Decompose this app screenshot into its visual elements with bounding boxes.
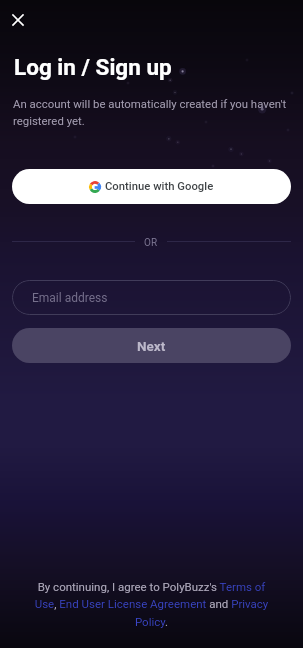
staticText: Log in / Sign up — [14, 54, 172, 80]
button[interactable]: Next — [12, 328, 291, 363]
button[interactable]: Close — [7, 9, 29, 31]
staticText: An account will be automatically created… — [13, 97, 291, 127]
staticText: By continuing, I agree to PolyBuzz's Ter… — [30, 580, 273, 629]
staticText: Email address — [32, 291, 108, 305]
staticText: Next — [137, 338, 166, 354]
staticText: Continue with Google — [105, 180, 214, 193]
staticText: OR — [144, 237, 158, 249]
button[interactable]: Email address — [12, 280, 291, 315]
button[interactable]: Continue with Google — [12, 169, 291, 204]
